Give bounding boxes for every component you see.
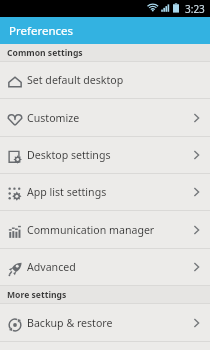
button[interactable]: App list settings bbox=[0, 174, 210, 210]
staticText: Advanced bbox=[27, 260, 76, 274]
staticText: 3:23 bbox=[185, 2, 205, 16]
staticText: App list settings bbox=[27, 185, 107, 199]
staticText: Preferences bbox=[9, 23, 74, 39]
staticText: Backup & restore bbox=[27, 316, 113, 330]
staticText: Customize bbox=[27, 111, 80, 125]
button[interactable]: Desktop settings bbox=[0, 137, 210, 173]
staticText: Desktop settings bbox=[27, 148, 111, 162]
staticText: Set default desktop bbox=[27, 73, 124, 87]
staticText: Common settings bbox=[7, 47, 83, 59]
button[interactable]: Customize bbox=[0, 99, 210, 136]
button[interactable]: Backup & restore bbox=[0, 304, 210, 341]
staticText: More settings bbox=[7, 289, 67, 301]
staticText: Communication manager bbox=[27, 223, 155, 237]
button[interactable]: Communication manager bbox=[0, 211, 210, 248]
button[interactable]: Advanced bbox=[0, 249, 210, 285]
button[interactable]: Set default desktop bbox=[0, 62, 210, 98]
